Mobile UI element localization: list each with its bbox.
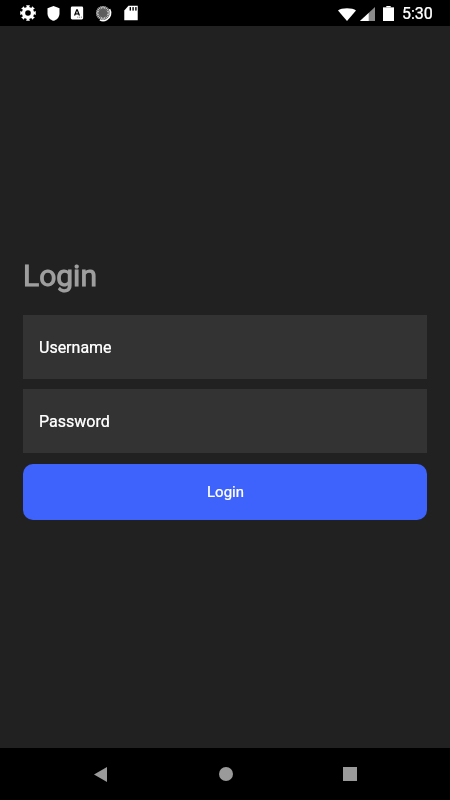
button[interactable]: Back: [76, 750, 125, 798]
staticText: Username: [39, 338, 112, 357]
staticText: Password: [39, 412, 110, 431]
staticText: Login: [207, 483, 244, 501]
button[interactable]: Recent apps: [325, 750, 374, 798]
staticText: 5:30: [402, 4, 433, 23]
button[interactable]: Login: [23, 464, 427, 520]
button[interactable]: Password: [23, 389, 427, 453]
button[interactable]: Home: [201, 750, 250, 798]
staticText: Login: [23, 258, 97, 293]
button[interactable]: Username: [23, 315, 427, 379]
